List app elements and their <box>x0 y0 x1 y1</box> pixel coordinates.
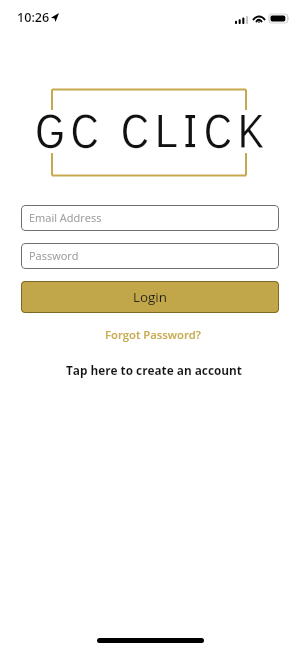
staticText: Forgot Password? <box>105 327 201 342</box>
button[interactable]: Email Address <box>21 205 279 231</box>
staticText: Tap here to create an account <box>66 362 242 378</box>
button[interactable]: Login <box>21 281 279 313</box>
staticText: 10:26 <box>17 9 50 26</box>
button[interactable]: Forgot Password? <box>24 327 282 342</box>
staticText: GC CLICK <box>36 98 269 154</box>
button[interactable]: Password <box>21 243 279 269</box>
staticText: Login <box>133 288 167 306</box>
staticText: Password <box>29 248 79 263</box>
staticText: Email Address <box>29 210 102 225</box>
other: Home indicator <box>97 638 204 643</box>
button[interactable]: Tap here to create an account <box>25 362 283 378</box>
